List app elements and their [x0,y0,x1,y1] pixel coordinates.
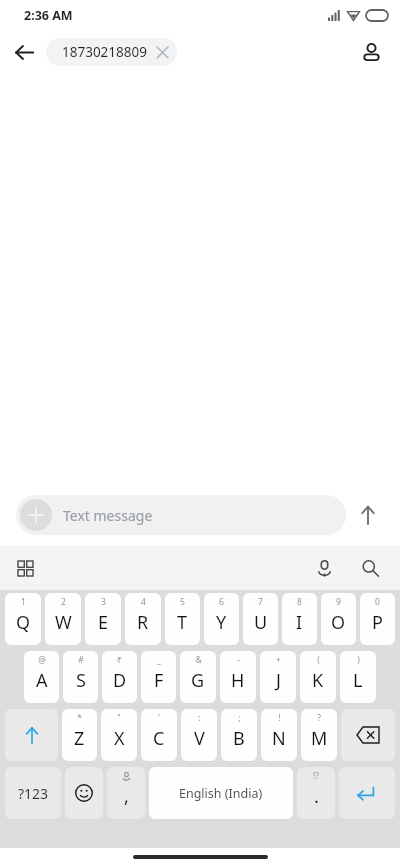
button[interactable]: + [260,651,296,703]
staticText: , [124,784,129,809]
staticText: W [55,610,72,635]
staticText: !? [313,770,319,782]
staticText: M [311,726,328,751]
staticText: Q [16,610,31,635]
staticText: " [117,712,121,724]
button[interactable]: shift [5,709,58,761]
staticText: 2:36 AM [24,7,73,24]
button[interactable]: Voice input [306,550,342,586]
button[interactable]: 0 [360,593,395,645]
button[interactable]: - [220,651,256,703]
staticText: Y [216,610,227,635]
staticText: ₹ [117,654,122,666]
staticText: L [353,668,363,693]
button[interactable]: English (India) [149,767,293,819]
button[interactable]: @ [24,651,59,703]
staticText: P [372,610,383,635]
staticText: A [36,668,48,693]
staticText: ! [278,712,281,724]
staticText: 1 [21,596,26,608]
button[interactable]: , [107,767,145,819]
staticText: 3 [101,596,106,608]
staticText: 2 [61,596,66,608]
staticText: T [177,610,188,635]
button[interactable]: Toolbar [8,551,42,585]
button[interactable]: : [181,709,217,761]
button[interactable]: 1 [5,593,41,645]
staticText: B [233,726,245,751]
staticText: F [154,668,164,693]
button[interactable]: ( [300,651,336,703]
button[interactable]: 4 [125,593,161,645]
staticText: 0 [375,596,380,608]
staticText: - [237,654,240,666]
staticText: H [231,668,245,693]
staticText: Text message [63,506,153,525]
button[interactable]: Send [346,493,390,537]
button[interactable]: & [180,651,216,703]
staticText: N [272,726,286,751]
staticText: & [195,654,202,666]
staticText: Z [74,726,85,751]
button[interactable]: 2 [45,593,81,645]
button[interactable]: 5 [165,593,200,645]
staticText: K [312,668,324,693]
button[interactable]: " [101,709,137,761]
staticText: _ [157,654,161,666]
button[interactable]: ₹ [102,651,137,703]
staticText: 6 [219,596,224,608]
staticText: I [296,610,303,635]
button[interactable]: enter [339,767,395,819]
staticText: S [76,668,86,693]
staticText: ) [357,654,360,666]
staticText: V [194,726,205,751]
button[interactable]: 9 [321,593,356,645]
button[interactable]: ; [221,709,257,761]
staticText: : [198,712,201,724]
staticText: J [276,668,281,693]
staticText: C [153,726,165,751]
button[interactable]: 3 [85,593,121,645]
staticText: 5 [180,596,185,608]
staticText: ? [317,712,321,724]
staticText: 8 [297,596,302,608]
staticText: ( [317,654,320,666]
staticText: * [77,712,82,724]
button[interactable]: Attach [16,495,346,535]
staticText: 9 [336,596,341,608]
button[interactable]: Back [6,34,42,70]
staticText: E [98,610,109,635]
other: Attach [20,499,52,531]
staticText: # [78,654,84,666]
staticText: English (India) [179,785,263,802]
staticText: ' [158,712,160,724]
staticText: X [114,726,125,751]
button[interactable]: _ [141,651,176,703]
staticText: D [113,668,127,693]
staticText: 4 [141,596,146,608]
button[interactable]: * [62,709,97,761]
button[interactable]: 7 [243,593,278,645]
button[interactable]: ' [141,709,177,761]
button[interactable]: # [63,651,98,703]
staticText: U [254,610,268,635]
button[interactable]: Contact details [352,33,390,71]
button[interactable]: 6 [204,593,239,645]
staticText: G [191,668,205,693]
button[interactable]: ?123 [5,767,61,819]
button[interactable]: emoji [65,767,103,819]
button[interactable]: Search [352,550,388,586]
staticText: ?123 [18,784,49,803]
button[interactable]: back [341,709,395,761]
button[interactable]: 8 [282,593,317,645]
staticText: 18730218809 [62,43,147,61]
button[interactable]: !? [297,767,335,819]
button[interactable]: ? [301,709,337,761]
staticText: ; [238,712,241,724]
staticText: . [314,784,319,809]
button[interactable]: ! [261,709,297,761]
staticText: @ [38,654,46,666]
staticText: R [137,610,149,635]
button[interactable]: ) [340,651,376,703]
button[interactable]: 18730218809 [46,38,177,66]
